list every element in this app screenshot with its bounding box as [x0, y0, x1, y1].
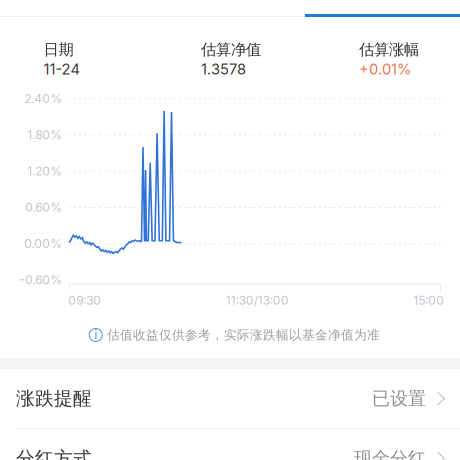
staticText: 0.60% — [25, 200, 62, 215]
staticText: 日期 — [43, 40, 73, 59]
staticText: 1.80% — [27, 128, 62, 142]
staticText: 估值收益仅供参考，实际涨跌幅以基金净值为准 — [107, 327, 380, 343]
button[interactable]: 分红方式 — [0, 429, 460, 460]
staticText: 分红方式 — [16, 447, 92, 460]
staticText: 2.40% — [24, 91, 62, 106]
staticText: 1.3578 — [201, 60, 246, 78]
staticText: +0.01% — [359, 60, 411, 78]
staticText: 现金分红 — [354, 447, 426, 460]
staticText: 11:30/13:00 — [226, 293, 289, 307]
staticText: 估算涨幅 — [359, 40, 419, 59]
staticText: 涨跌提醒 — [16, 387, 92, 410]
staticText: 1.20% — [27, 164, 62, 178]
staticText: i — [94, 327, 97, 342]
staticText: -0.60% — [19, 273, 62, 287]
staticText: 15:00 — [413, 293, 444, 307]
button[interactable]: 涨跌提醒 — [0, 369, 460, 428]
staticText: 已设置 — [372, 387, 426, 410]
staticText: 0.00% — [24, 236, 62, 251]
staticText: 09:30 — [68, 293, 101, 307]
staticText: 11-24 — [43, 60, 79, 78]
staticText: 估算净值 — [201, 40, 261, 59]
